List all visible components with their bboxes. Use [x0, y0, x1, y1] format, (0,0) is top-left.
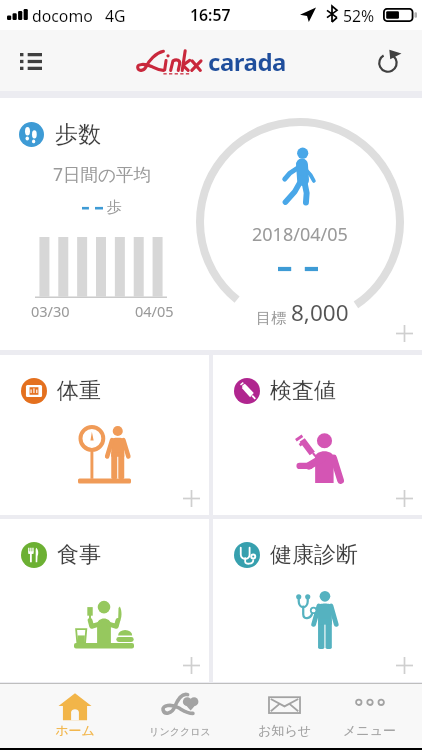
button[interactable]: Menu — [8, 38, 54, 84]
button[interactable]: メニュー — [317, 684, 422, 748]
staticText: 03/30 — [31, 301, 70, 321]
staticText: メニュー — [343, 722, 396, 738]
button[interactable]: お知らせ — [232, 684, 337, 748]
button[interactable]: 歩数 — [0, 98, 422, 350]
staticText: ホーム — [55, 722, 95, 738]
staticText: お知らせ — [258, 722, 311, 738]
staticText: carada — [208, 45, 286, 78]
button[interactable]: Refresh — [366, 38, 412, 84]
staticText: 歩数 — [55, 120, 101, 149]
staticText: 健康診断 — [270, 541, 358, 569]
staticText: 体重 — [57, 377, 101, 405]
staticText: 16:57 — [190, 4, 231, 26]
button[interactable]: 健康診断 — [213, 519, 422, 682]
staticText: 検査値 — [270, 377, 336, 405]
button[interactable]: リンククロス — [127, 684, 232, 748]
button[interactable]: 食事 — [0, 519, 209, 682]
staticText: 目標 — [256, 309, 286, 328]
button[interactable]: 検査値 — [213, 355, 422, 515]
staticText: 4G — [105, 5, 126, 27]
staticText: 歩 — [107, 198, 122, 217]
button[interactable]: ホーム — [22, 684, 127, 748]
button[interactable]: 体重 — [0, 355, 209, 515]
staticText: 52% — [343, 5, 375, 27]
staticText: 7日間の平均 — [53, 162, 151, 186]
staticText: 8,000 — [291, 297, 349, 328]
staticText: 04/05 — [135, 301, 174, 321]
staticText: docomo — [32, 5, 93, 27]
staticText: 2018/04/05 — [252, 222, 348, 247]
staticText: リンククロス — [149, 725, 211, 738]
staticText: 食事 — [57, 541, 101, 569]
